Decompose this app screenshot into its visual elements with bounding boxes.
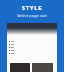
staticText: Select page size xyxy=(0,13,64,18)
button[interactable] xyxy=(7,23,57,72)
staticText: STYLE xyxy=(0,4,64,12)
